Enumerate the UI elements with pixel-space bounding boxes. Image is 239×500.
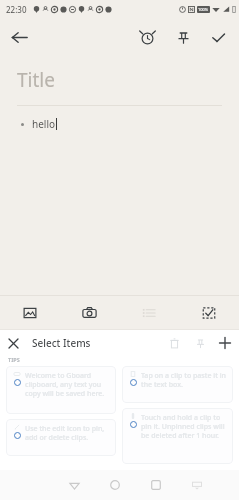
button[interactable]: Back xyxy=(0,18,38,56)
button[interactable]: Pin xyxy=(165,19,201,55)
staticText: 22:30 xyxy=(6,4,27,15)
staticText: Tap on a clip to paste it in the text bo… xyxy=(141,371,229,389)
button[interactable]: Close xyxy=(0,330,26,356)
button[interactable]: Use the edit icon to pin, add or delete … xyxy=(6,419,116,456)
staticText: Select Items xyxy=(32,336,91,350)
staticText: Welcome to Gboard clipboard, any text yo… xyxy=(25,371,112,398)
button[interactable]: Add image xyxy=(0,296,59,329)
button[interactable]: Select xyxy=(179,296,239,329)
staticText: hello xyxy=(32,117,56,131)
button[interactable]: Hide keyboard xyxy=(176,470,217,500)
button[interactable]: Reminder xyxy=(129,19,165,55)
button[interactable]: Back xyxy=(54,470,94,500)
button[interactable]: Touch and hold a clip to pin it. Unpinne… xyxy=(122,408,233,464)
button[interactable]: Delete xyxy=(161,330,187,356)
staticText: Title xyxy=(17,67,55,93)
button[interactable]: Tap on a clip to paste it in the text bo… xyxy=(122,366,233,403)
button[interactable]: Recents xyxy=(135,470,176,500)
button[interactable]: Home xyxy=(94,470,135,500)
staticText: TIPS xyxy=(8,356,20,363)
button[interactable]: Welcome to Gboard clipboard, any text yo… xyxy=(6,366,116,414)
button[interactable]: Add clip xyxy=(213,330,236,356)
staticText: Use the edit icon to pin, add or delete … xyxy=(25,424,112,442)
staticText: 100% xyxy=(198,7,209,12)
button[interactable]: Take photo xyxy=(59,296,119,329)
button[interactable]: Done xyxy=(201,18,236,56)
staticText: Touch and hold a clip to pin it. Unpinne… xyxy=(141,413,229,440)
button[interactable]: Pin clip xyxy=(187,330,213,356)
